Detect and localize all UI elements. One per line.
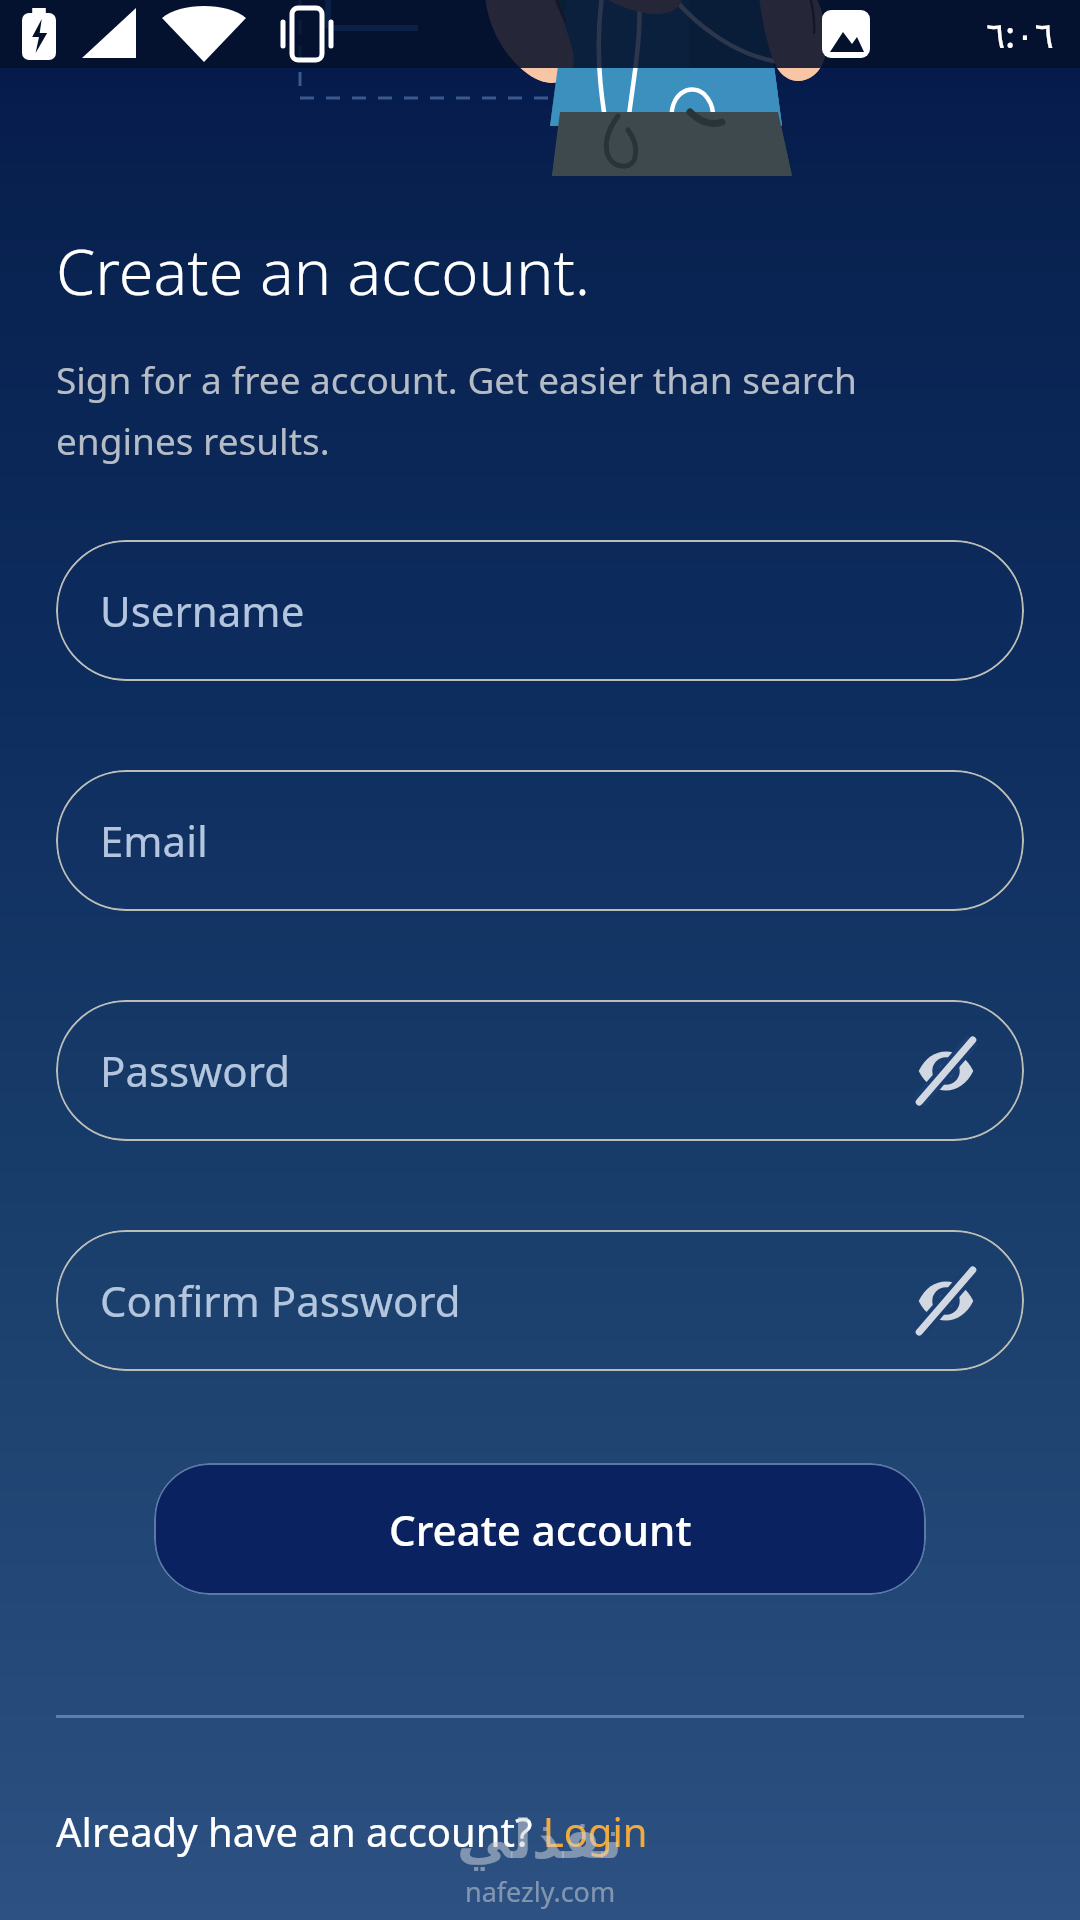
staticText: Already have an account? Login bbox=[56, 1804, 648, 1858]
staticText: نفذلي bbox=[457, 1808, 623, 1871]
button[interactable]: Show password bbox=[908, 1033, 984, 1109]
button[interactable]: Already have an account? Login bbox=[56, 1804, 648, 1858]
staticText: Password bbox=[100, 1042, 290, 1099]
staticText: Confirm Password bbox=[100, 1272, 461, 1329]
button[interactable]: Confirm Password bbox=[56, 1230, 1024, 1371]
staticText: Email bbox=[100, 812, 208, 869]
staticText: ٦:٠٦ bbox=[986, 10, 1054, 59]
staticText: Create an account. bbox=[56, 228, 591, 314]
staticText: Create account bbox=[389, 1501, 692, 1558]
staticText: Username bbox=[100, 582, 305, 639]
staticText: nafezly.com bbox=[465, 1873, 616, 1910]
button[interactable]: Email bbox=[56, 770, 1024, 911]
button[interactable]: Password bbox=[56, 1000, 1024, 1141]
staticText: Sign for a free account. Get easier than… bbox=[56, 354, 998, 466]
button[interactable]: Show password bbox=[908, 1263, 984, 1339]
button[interactable]: Create account bbox=[154, 1463, 926, 1595]
button[interactable]: Username bbox=[56, 540, 1024, 681]
